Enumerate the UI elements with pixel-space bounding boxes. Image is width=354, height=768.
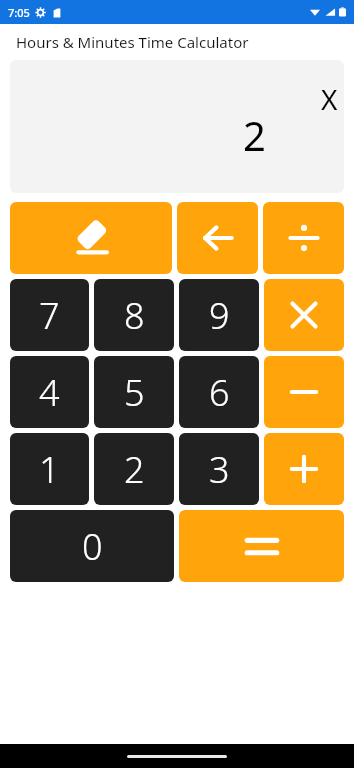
button[interactable]: Multiply (264, 279, 344, 351)
staticText: 8 (124, 291, 145, 340)
staticText: 1 (39, 445, 60, 494)
staticText: 4 (39, 368, 60, 417)
button[interactable]: 1 (10, 433, 89, 505)
staticText: 7:05 (8, 5, 30, 20)
staticText: 2 (243, 108, 266, 162)
button[interactable]: 8 (94, 279, 174, 351)
staticText: X (321, 80, 338, 118)
button[interactable]: 0 (10, 510, 174, 582)
button[interactable]: Equals (179, 510, 344, 582)
button[interactable]: 4 (10, 356, 89, 428)
staticText: 3 (209, 445, 230, 494)
button[interactable]: 5 (94, 356, 174, 428)
button[interactable]: 2 (94, 433, 174, 505)
button[interactable]: X (10, 60, 344, 193)
button[interactable]: 3 (179, 433, 259, 505)
button[interactable]: Plus (264, 433, 344, 505)
button[interactable]: Backspace (177, 202, 258, 274)
staticText: 6 (209, 368, 230, 417)
staticText: 7 (39, 291, 60, 340)
button[interactable]: Clear (10, 202, 172, 274)
staticText: 2 (124, 445, 145, 494)
staticText: Hours & Minutes Time Calculator (16, 32, 249, 52)
button[interactable]: 6 (179, 356, 259, 428)
button[interactable]: 7 (10, 279, 89, 351)
staticText: 9 (209, 291, 230, 340)
staticText: 0 (82, 522, 103, 571)
staticText: 5 (124, 368, 145, 417)
button[interactable]: Divide (263, 202, 344, 274)
button[interactable]: 9 (179, 279, 259, 351)
button[interactable]: Minus (264, 356, 344, 428)
